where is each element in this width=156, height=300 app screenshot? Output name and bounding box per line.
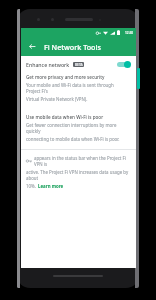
staticText: BETA bbox=[75, 63, 83, 67]
staticText: 10%. bbox=[26, 183, 36, 189]
staticText: appears in the status bar when the Proje… bbox=[34, 155, 130, 167]
staticText: Fi Network Tools bbox=[44, 42, 101, 52]
button[interactable]: Enhance network bbox=[21, 56, 136, 72]
button[interactable]: Learn more bbox=[38, 183, 64, 189]
staticText: 12:30 bbox=[125, 31, 134, 35]
button[interactable]: Back bbox=[26, 40, 39, 53]
staticText: connecting to mobile data when Wi-Fi is … bbox=[26, 136, 120, 142]
staticText: Virtual Private Network (VPN). bbox=[26, 96, 88, 102]
staticText: Get more privacy and more security bbox=[26, 74, 105, 80]
staticText: Learn more bbox=[38, 183, 64, 189]
button[interactable]: Enhance network toggle bbox=[115, 59, 131, 69]
staticText: Get fewer connection interruptions by mo… bbox=[26, 122, 129, 134]
staticText: Your mobile and Wi-Fi data is sent throu… bbox=[26, 82, 129, 94]
staticText: Use mobile data when Wi-Fi is poor bbox=[26, 114, 104, 120]
staticText: active. The Project Fi VPN increases dat… bbox=[26, 169, 130, 181]
staticText: Enhance network bbox=[26, 61, 70, 68]
